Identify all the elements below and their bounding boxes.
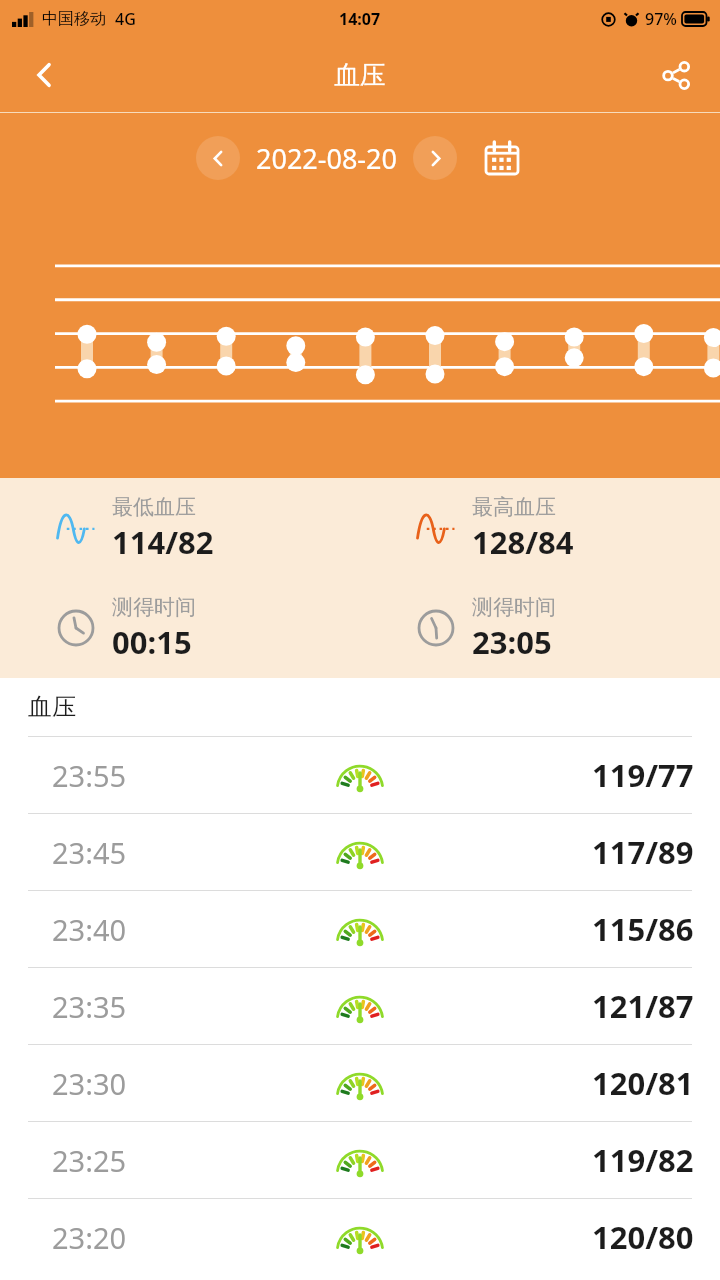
staticText: 2022-08-20 — [256, 140, 397, 177]
button[interactable]: 23:25 — [0, 1122, 720, 1198]
button[interactable]: Back — [14, 45, 74, 105]
button[interactable]: Next day — [413, 136, 457, 180]
staticText: 128/84 — [472, 521, 574, 563]
staticText: 23:05 — [472, 621, 552, 663]
staticText: 14:07 — [339, 8, 381, 30]
staticText: 119/82 — [592, 1139, 694, 1181]
staticText: 23:45 — [52, 833, 127, 872]
button[interactable]: 23:40 — [0, 891, 720, 967]
staticText: 120/80 — [592, 1216, 694, 1258]
staticText: 最低血压 — [112, 494, 196, 520]
staticText: 23:55 — [52, 756, 127, 795]
staticText: 测得时间 — [472, 594, 556, 620]
staticText: 血压 — [28, 692, 76, 722]
staticText: 血压 — [334, 59, 386, 92]
staticText: 中国移动 — [42, 9, 106, 29]
staticText: 00:15 — [112, 621, 192, 663]
button[interactable]: 23:30 — [0, 1045, 720, 1121]
staticText: 4G — [115, 8, 136, 30]
button[interactable]: 23:20 — [0, 1199, 720, 1275]
button[interactable]: 23:35 — [0, 968, 720, 1044]
staticText: 23:40 — [52, 910, 127, 949]
button[interactable]: Previous day — [196, 136, 240, 180]
button[interactable]: Share — [646, 45, 706, 105]
staticText: 23:30 — [52, 1064, 127, 1103]
button[interactable]: 23:55 — [0, 737, 720, 813]
staticText: 114/82 — [112, 521, 214, 563]
staticText: 120/81 — [592, 1062, 694, 1104]
button[interactable]: Pick date — [479, 135, 525, 181]
staticText: 最高血压 — [472, 494, 556, 520]
staticText: 测得时间 — [112, 594, 196, 620]
button[interactable]: 23:45 — [0, 814, 720, 890]
staticText: 117/89 — [592, 831, 694, 873]
staticText: 115/86 — [592, 908, 694, 950]
staticText: 97% — [645, 8, 677, 30]
staticText: 23:25 — [52, 1141, 127, 1180]
staticText: 119/77 — [592, 754, 694, 796]
staticText: 121/87 — [592, 985, 694, 1027]
staticText: 23:35 — [52, 987, 127, 1026]
staticText: 23:20 — [52, 1218, 127, 1257]
